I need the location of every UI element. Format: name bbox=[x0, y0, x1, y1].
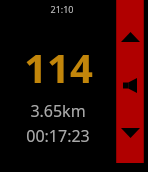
button[interactable]: Speaker bbox=[117, 70, 143, 100]
staticText: 3.65km bbox=[30, 100, 86, 122]
staticText: 114 bbox=[24, 40, 93, 94]
button[interactable]: Volume up bbox=[117, 22, 143, 52]
staticText: 21:10 bbox=[50, 3, 74, 15]
staticText: 00:17:23 bbox=[26, 125, 90, 147]
button[interactable]: Volume down bbox=[117, 118, 143, 148]
